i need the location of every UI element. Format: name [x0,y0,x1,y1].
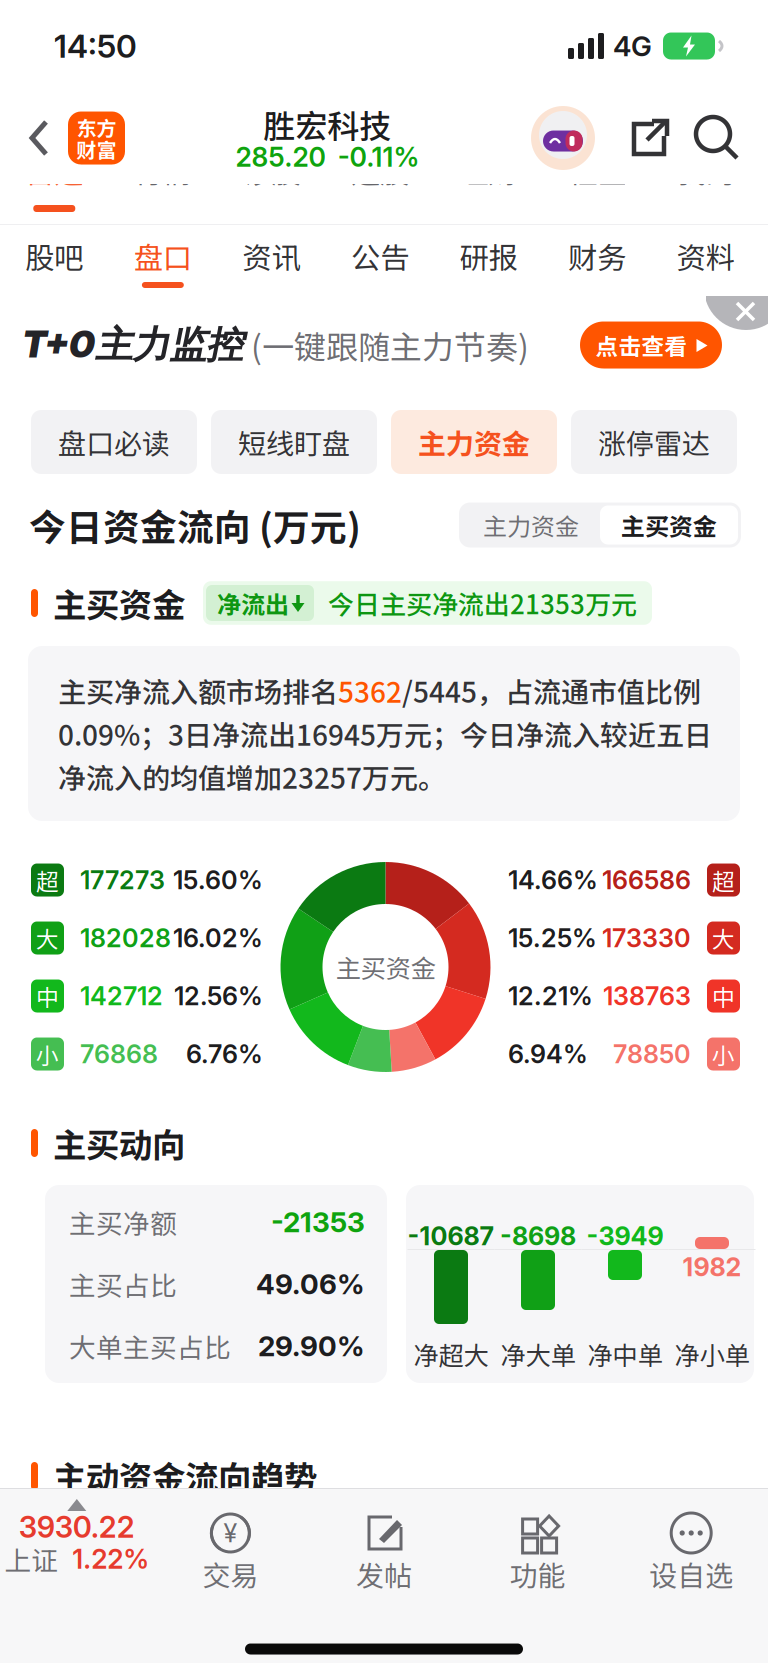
staticText: 我的 [677,149,735,192]
staticText: 5362 [338,670,402,711]
staticText: ¥ [223,1518,237,1548]
staticText: (一键跟随主力节奏) [251,322,529,368]
button[interactable]: ¥ [154,1489,307,1615]
staticText: -10687 [407,1221,494,1251]
button[interactable]: 返回 [0,116,68,160]
staticText: 今日资金流向 (万元) [29,498,361,552]
staticText: -3949 [586,1221,663,1251]
staticText: 主买动向 [53,1119,185,1167]
staticText: 中 [712,980,735,1012]
staticText: 15.25% [508,923,597,953]
button[interactable]: 股吧 [0,225,109,296]
staticText: 29.90% [258,1329,365,1363]
staticText: 0.09%；3日净流出16945万元；今日净流入较近五日 [58,713,712,754]
staticText: 中 [36,980,59,1012]
staticText: 大单主买占比 [69,1327,231,1365]
staticText: 15.60% [173,865,263,895]
button[interactable]: 主买资金 [600,505,738,544]
staticText: 3930.22 [19,1509,135,1545]
staticText: 盘口 [134,235,192,277]
button[interactable]: 搜索 [692,113,768,163]
button[interactable]: 东方财富 [68,111,125,164]
staticText: 主买资金 [53,579,185,627]
staticText: /5445，占流通市值比例 [402,670,701,711]
staticText: 142712 [80,981,163,1011]
staticText: 主动资金流向趋势 [53,1452,317,1500]
staticText: 78850 [613,1039,691,1069]
staticText: 182028 [80,923,171,953]
button[interactable]: 资料 [651,225,760,296]
staticText: 主买资金 [335,949,435,985]
staticText: 发帖 [356,1554,412,1594]
staticText: 主买净流入额市场排名 [58,670,338,711]
button[interactable]: 设自选 [614,1489,768,1615]
button[interactable]: 短线盯盘 [211,410,377,474]
button[interactable]: T+0主力监控 [0,296,768,394]
staticText: 理财 [460,149,518,192]
button[interactable]: 3930.22 [0,1489,154,1615]
button[interactable]: AI 助手 [530,105,596,171]
button[interactable]: 关闭 [706,296,768,336]
staticText: 点击查看 [595,329,687,361]
button[interactable]: 功能 [461,1489,614,1615]
staticText: -21353 [271,1205,365,1239]
button[interactable]: 盘口 [109,225,217,296]
staticText: 166586 [602,865,691,895]
staticText: 功能 [510,1554,566,1594]
staticText: 净小单 [674,1336,749,1372]
staticText: 主买净额 [69,1203,177,1241]
staticText: 12.56% [174,981,263,1011]
button[interactable]: 主力资金 [391,410,557,474]
button[interactable]: 公告 [326,225,434,296]
staticText: 自选 [25,149,83,192]
staticText: 研报 [460,235,518,277]
staticText: 1982 [682,1252,741,1282]
staticText: 177273 [80,865,165,895]
staticText: 主力资金 [418,422,530,462]
staticText: 小 [36,1038,59,1070]
button[interactable]: 财务 [543,225,651,296]
staticText: 主力资金 [483,508,579,542]
staticText: T+0主力监控 [22,321,243,369]
button[interactable]: 主力资金 [462,505,600,544]
staticText: 财富 [76,134,116,163]
staticText: 涨停雷达 [598,422,710,462]
staticText: 今日主买净流出21353万元 [328,584,637,622]
button[interactable]: 涨停雷达 [571,410,737,474]
staticText: 资讯 [242,235,300,277]
staticText: 14:50 [54,27,137,65]
button[interactable]: 研报 [434,225,543,296]
staticText: 主买资金 [621,508,717,542]
staticText: 12.21% [508,981,593,1011]
staticText: 盘口必读 [58,422,170,462]
staticText: 净大单 [500,1336,575,1372]
staticText: 社区 [568,149,626,192]
staticText: 6.94% [508,1039,588,1069]
staticText: 诊股 [242,149,300,192]
staticText: 净流入的均值增加23257万元。 [58,756,446,797]
staticText: 超 [36,864,59,896]
staticText: 1.22% [72,1543,149,1575]
staticText: 财务 [568,235,626,277]
staticText: 上证 [4,1540,58,1578]
staticText: 173330 [602,923,691,953]
staticText: 短线盯盘 [238,422,350,462]
staticText: 大 [712,922,735,954]
staticText: 胜宏科技 [263,101,391,147]
staticText: 东方 [76,112,116,141]
staticText: 行情 [134,149,192,192]
staticText: 主买占比 [69,1265,177,1303]
button[interactable]: 资讯 [217,225,326,296]
staticText: 公告 [351,235,409,277]
staticText: 选股 [351,149,409,192]
staticText: -8698 [500,1221,576,1251]
staticText: 49.06% [256,1267,365,1301]
button[interactable]: 分享 [596,114,692,162]
button[interactable]: 发帖 [307,1489,461,1615]
staticText: 净中单 [587,1336,662,1372]
staticText: 交易 [202,1554,258,1594]
staticText: 138763 [603,981,691,1011]
staticText: 小 [712,1038,735,1070]
button[interactable]: 盘口必读 [31,410,197,474]
staticText: 超 [712,864,735,896]
